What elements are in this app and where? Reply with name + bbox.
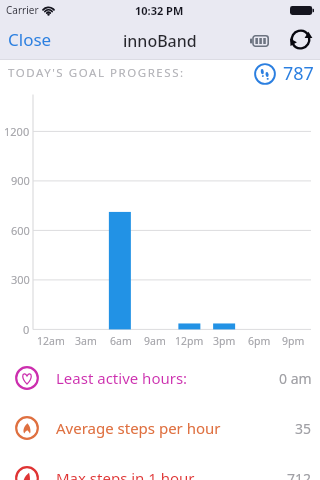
staticText: 6pm xyxy=(248,334,271,348)
staticText: 12pm xyxy=(175,334,204,348)
staticText: Max steps in 1 hour xyxy=(56,468,195,480)
staticText: 12am xyxy=(37,334,65,348)
staticText: 600 xyxy=(11,223,30,237)
staticText: Least active hours: xyxy=(56,368,188,388)
staticText: Close xyxy=(8,28,52,51)
staticText: Carrier xyxy=(6,3,39,17)
staticText: 0 am xyxy=(279,369,312,388)
staticText: 787 xyxy=(283,61,314,86)
button[interactable]: Average steps per hour xyxy=(0,403,320,453)
staticText: 300 xyxy=(11,272,30,286)
staticText: TODAY'S GOAL PROGRESS: xyxy=(8,65,185,81)
button[interactable]: Least active hours: xyxy=(0,353,320,403)
button[interactable]: Close xyxy=(0,20,64,59)
button[interactable]: Max steps in 1 hour xyxy=(0,453,320,480)
button[interactable]: Band battery xyxy=(240,20,278,59)
button[interactable]: Refresh xyxy=(281,20,319,59)
staticText: 9pm xyxy=(282,334,305,348)
staticText: Average steps per hour xyxy=(56,418,221,438)
staticText: 3am xyxy=(75,334,97,348)
staticText: 0 xyxy=(23,322,30,336)
staticText: 6am xyxy=(110,334,132,348)
staticText: 712 xyxy=(287,469,312,480)
staticText: 1200 xyxy=(4,124,30,138)
staticText: 10:32 PM xyxy=(135,3,184,18)
staticText: 900 xyxy=(11,173,30,187)
staticText: 3pm xyxy=(213,334,236,348)
staticText: 9am xyxy=(144,334,166,348)
staticText: innoBand xyxy=(123,30,197,52)
staticText: 35 xyxy=(295,419,312,438)
